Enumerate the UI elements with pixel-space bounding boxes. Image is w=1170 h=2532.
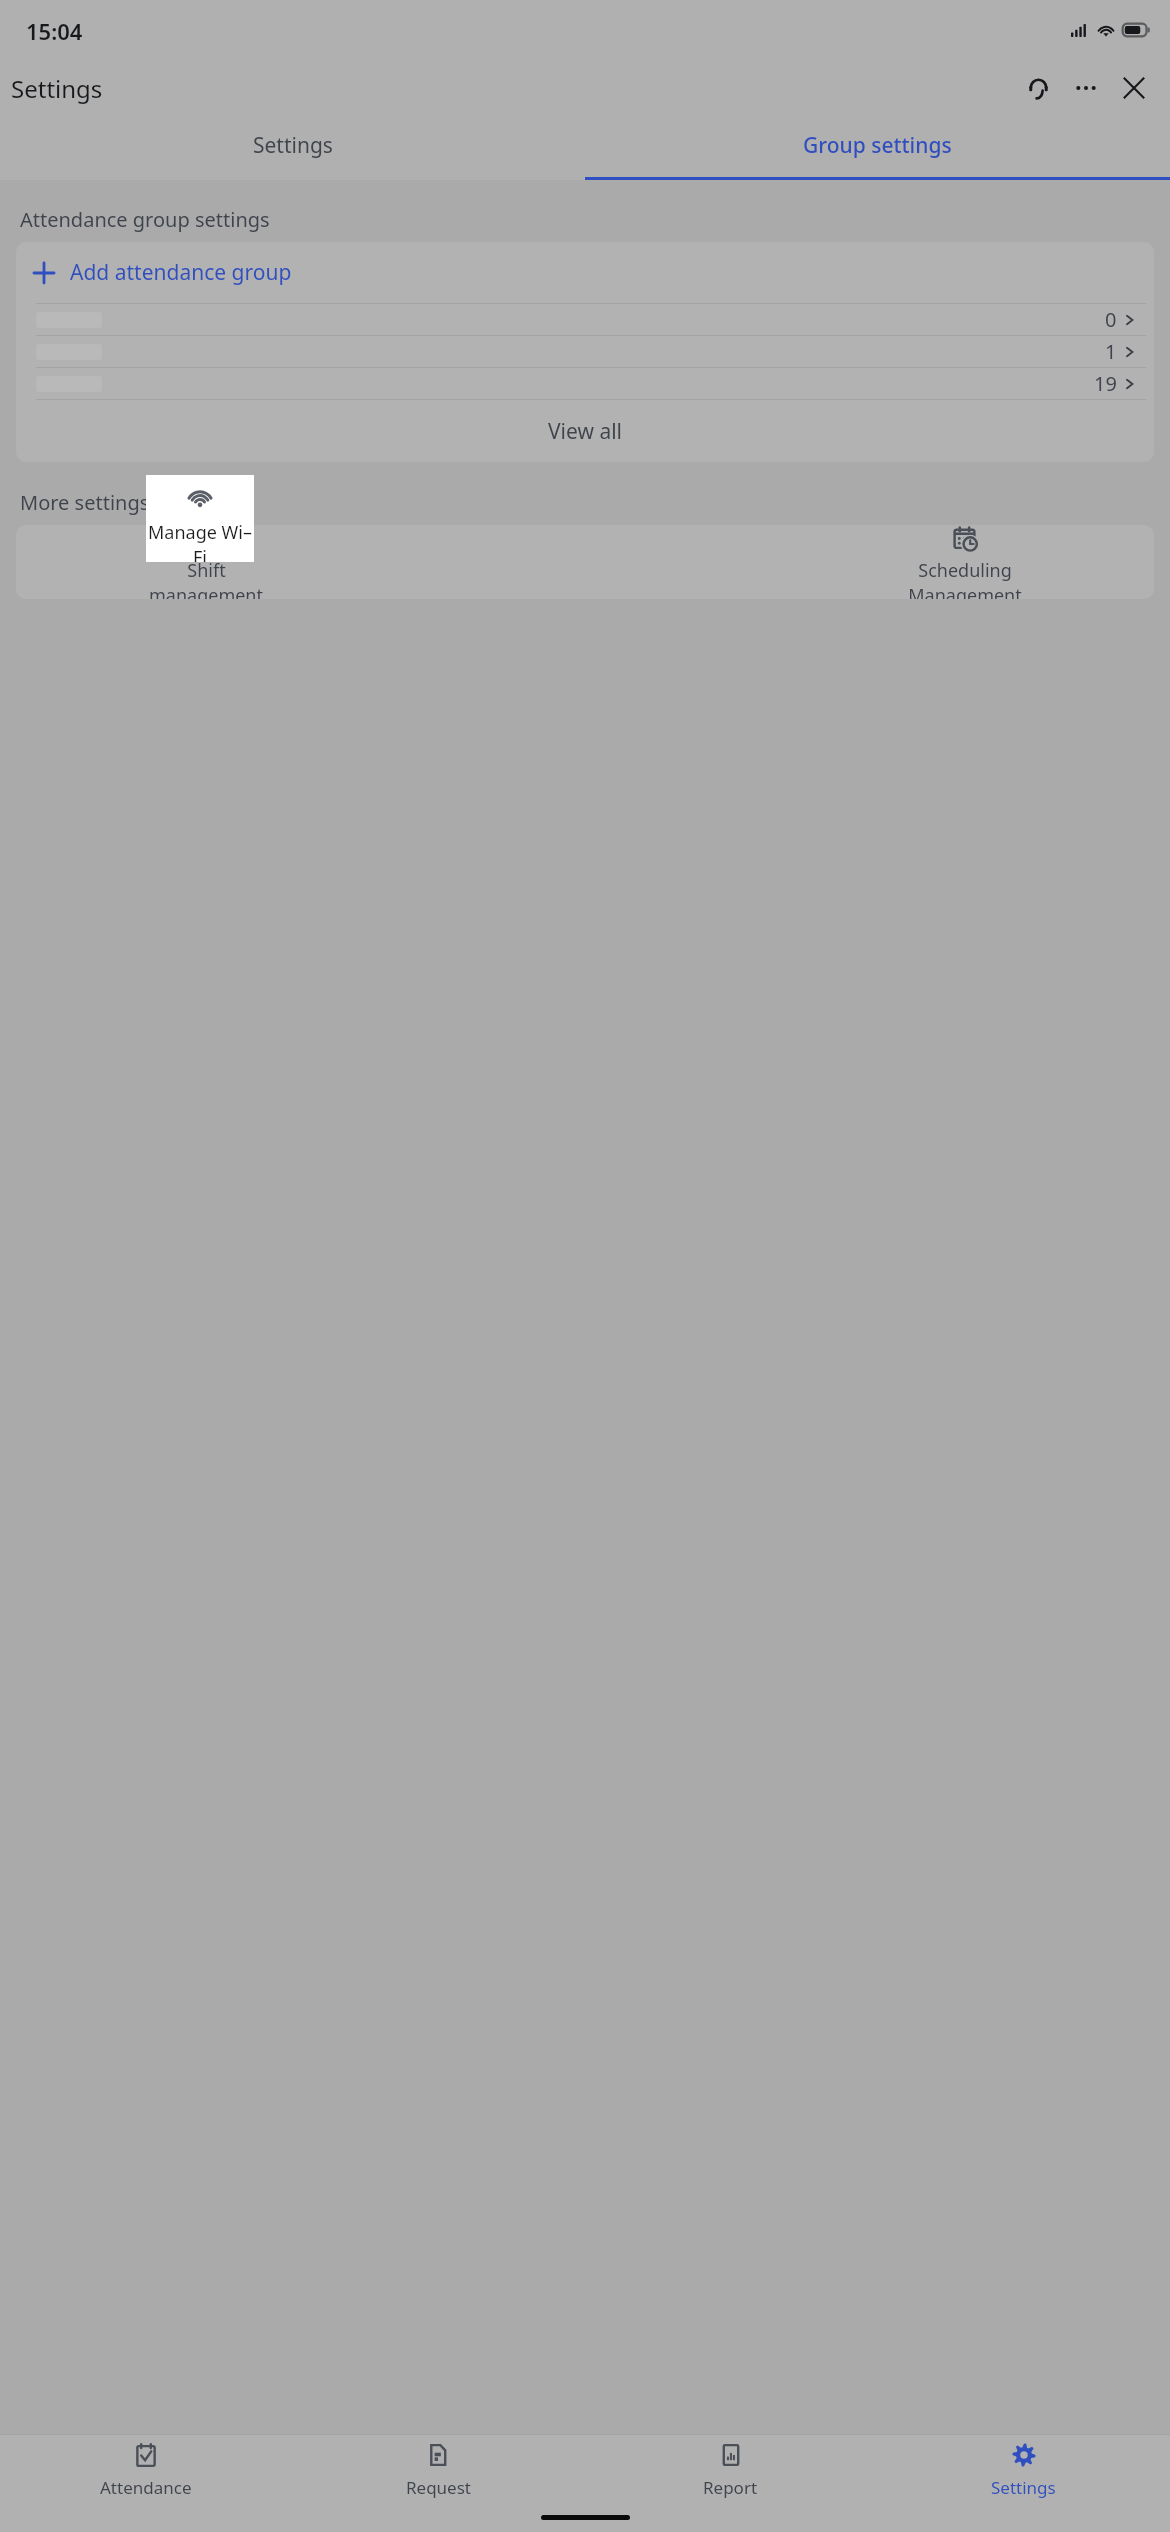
button[interactable]: Settings [877,2435,1170,2506]
staticText: Settings [11,72,103,105]
button[interactable]: 0 [16,304,1154,335]
button[interactable]: 1 [16,336,1154,367]
staticText: Management [908,583,1022,599]
staticText: Report [703,2476,758,2499]
button[interactable]: Attendance [0,2435,292,2506]
button[interactable]: Shift [16,525,396,599]
staticText: Attendance [100,2476,192,2499]
button[interactable]: Scheduling [775,525,1154,599]
staticText: More settings [20,489,150,516]
staticText: Settings [253,131,333,160]
staticText: 1 [1105,338,1117,365]
button[interactable]: View all [16,400,1154,462]
button[interactable]: Close [1112,66,1156,110]
button[interactable]: 19 [16,368,1154,399]
staticText: management [149,583,263,599]
button[interactable]: Settings [0,118,585,180]
button[interactable]: Customer service [1016,66,1060,110]
button[interactable]: Report [584,2435,877,2506]
staticText: View all [548,417,623,446]
button[interactable]: Add attendance group [16,242,1154,303]
staticText: Manage Wi–Fi [146,520,254,562]
staticText: 15:04 [26,16,83,46]
staticText: 19 [1094,370,1117,397]
button[interactable]: Request [292,2435,584,2506]
staticText: Request [406,2476,471,2499]
staticText: Shift [187,558,226,583]
button[interactable]: Group settings [585,118,1170,180]
button[interactable]: More options [1064,66,1108,110]
button[interactable]: Manage Wi-Fi [146,475,254,562]
staticText: Scheduling [918,558,1012,583]
staticText: Add attendance group [70,258,292,287]
staticText: Settings [991,2476,1056,2499]
staticText: Group settings [803,131,952,160]
staticText: Attendance group settings [20,206,270,233]
staticText: 0 [1105,306,1117,333]
